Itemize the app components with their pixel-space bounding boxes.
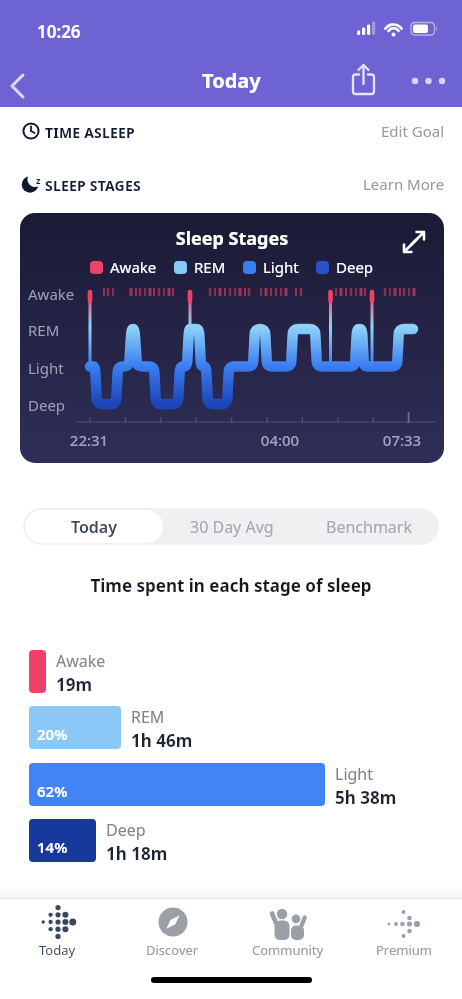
staticText: 1h 18m <box>106 842 168 862</box>
staticText: TIME ASLEEP <box>45 123 136 142</box>
staticText: REM <box>194 257 226 277</box>
staticText: Today <box>39 941 76 959</box>
staticText: Deep <box>106 819 146 841</box>
staticText: Deep <box>336 257 374 277</box>
staticText: REM <box>28 320 60 340</box>
staticText: 19m <box>56 673 93 693</box>
button[interactable] <box>342 59 386 103</box>
staticText: Awake <box>56 650 106 672</box>
staticText: Awake <box>28 284 75 304</box>
button[interactable]: Sleep Stages <box>20 213 444 463</box>
button[interactable]: z <box>0 155 462 213</box>
staticText: Community <box>252 941 324 959</box>
button[interactable] <box>0 59 44 103</box>
staticText: Premium <box>376 941 433 959</box>
staticText: 20% <box>37 724 68 744</box>
staticText: Benchmark <box>326 516 412 538</box>
staticText: Learn More <box>363 174 445 194</box>
button[interactable]: Community <box>230 899 346 961</box>
staticText: 04:00 <box>250 430 310 450</box>
staticText: 14% <box>37 837 68 857</box>
staticText: Light <box>263 257 299 277</box>
staticText: REM <box>131 706 165 728</box>
staticText: Light <box>28 358 64 378</box>
staticText: 1h 46m <box>131 729 193 749</box>
staticText: Sleep Stages <box>20 226 444 251</box>
staticText: 10:26 <box>37 20 81 43</box>
button[interactable]: Premium <box>346 899 462 961</box>
staticText: Deep <box>28 395 66 415</box>
staticText: z <box>36 174 41 186</box>
staticText: 30 Day Avg <box>190 516 274 538</box>
staticText: Discover <box>146 941 199 959</box>
staticText: Edit Goal <box>381 121 445 141</box>
staticText: Today <box>202 67 261 94</box>
staticText: 62% <box>37 781 68 801</box>
staticText: Today <box>71 516 118 538</box>
button[interactable]: 30 Day Avg <box>163 510 300 543</box>
staticText: 22:31 <box>59 430 119 450</box>
button[interactable]: Benchmark <box>300 510 437 543</box>
button[interactable]: Discover <box>115 899 230 961</box>
button[interactable]: TIME ASLEEP <box>0 107 462 155</box>
staticText: SLEEP STAGES <box>45 176 141 195</box>
staticText: Time spent in each stage of sleep <box>0 574 462 597</box>
staticText: Light <box>335 763 374 785</box>
staticText: 07:33 <box>372 430 432 450</box>
button[interactable]: Today <box>0 899 115 961</box>
button[interactable]: Today <box>25 510 163 543</box>
staticText: Awake <box>110 257 157 277</box>
button[interactable] <box>407 59 451 103</box>
staticText: 5h 38m <box>335 786 397 806</box>
